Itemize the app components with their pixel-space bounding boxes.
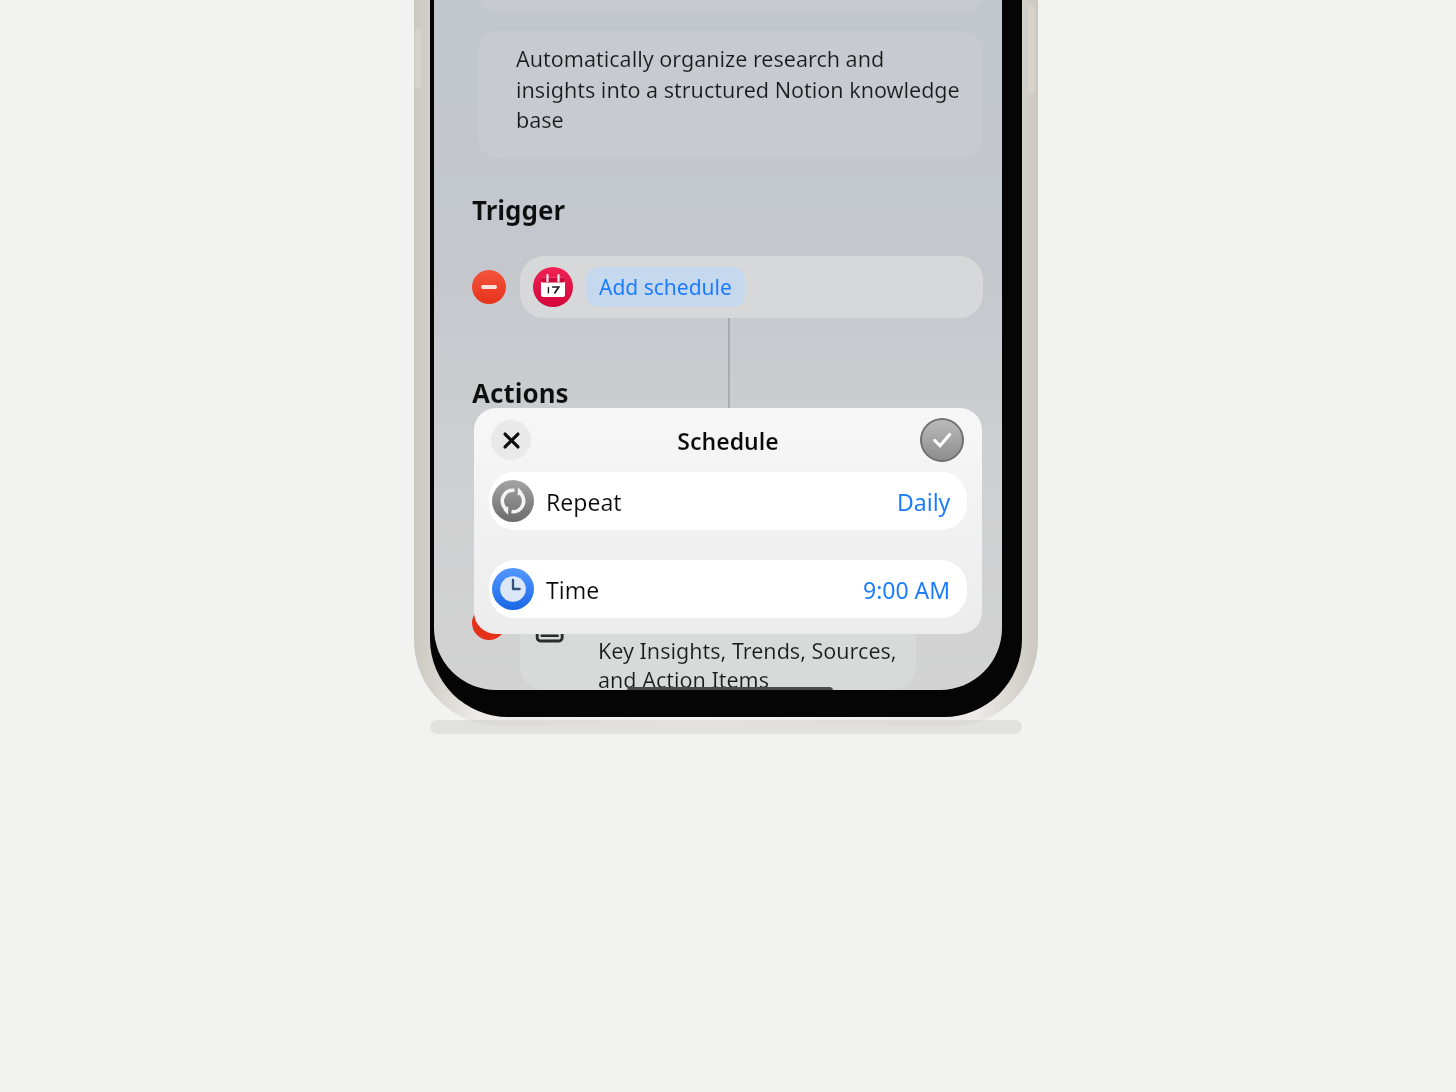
staticText: Daily — [897, 486, 951, 517]
button[interactable]: Remove trigger — [472, 270, 506, 304]
staticText: Time — [546, 574, 600, 605]
button[interactable]: Repeat — [489, 472, 967, 530]
button[interactable]: Add schedule — [520, 256, 983, 318]
staticText: Trigger — [472, 192, 566, 227]
staticText: 9:00 AM — [863, 574, 951, 605]
button[interactable]: Close — [491, 420, 531, 460]
staticText: Actions — [472, 375, 569, 410]
staticText: Add schedule — [599, 273, 732, 302]
staticText: Key Insights, Trends, Sources, and Actio… — [598, 636, 910, 690]
staticText: Schedule — [677, 425, 779, 456]
button[interactable]: Time — [489, 560, 967, 618]
staticText: Automatically organize research and insi… — [516, 44, 960, 134]
staticText: Repeat — [546, 486, 622, 517]
button[interactable]: Confirm — [920, 418, 964, 462]
